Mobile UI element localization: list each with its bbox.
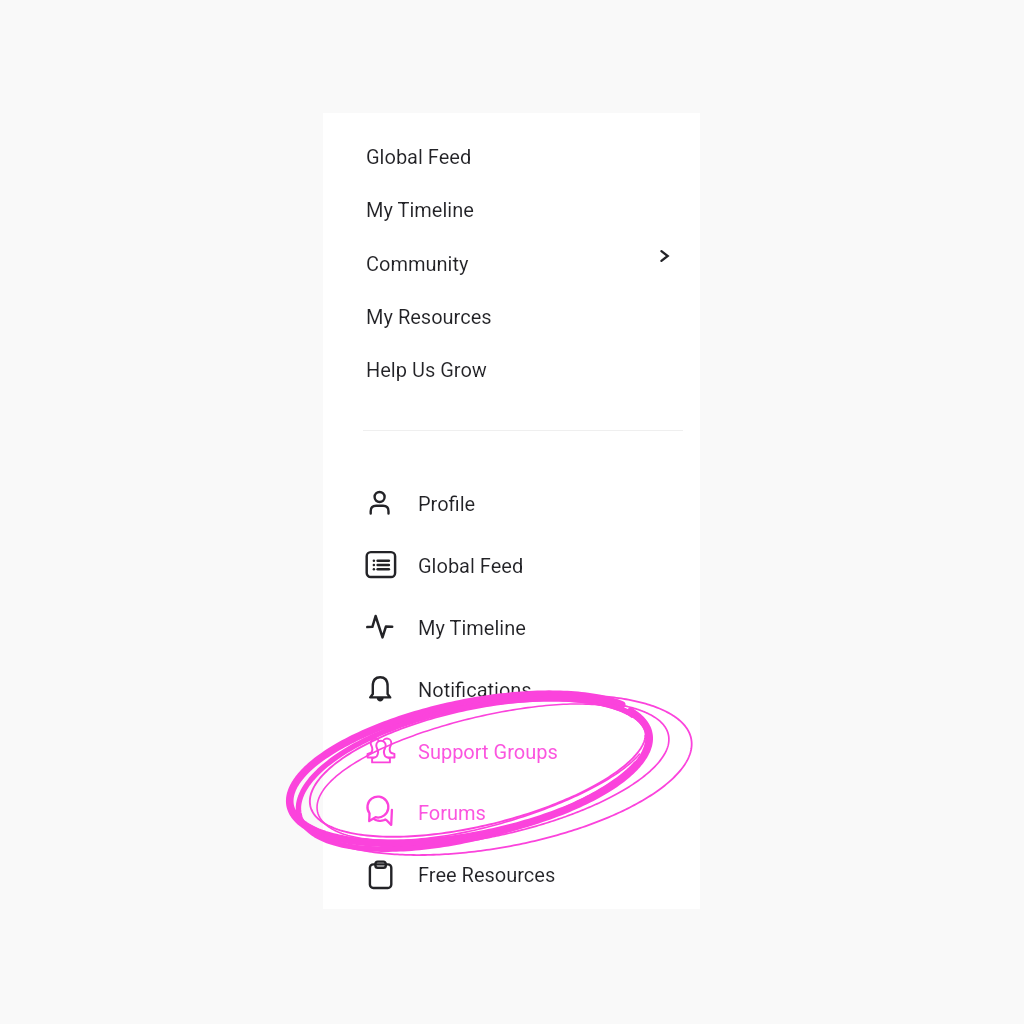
other: Highlight annotation [0, 0, 1024, 1024]
button[interactable]: My Timeline [323, 603, 700, 651]
button[interactable]: Free Resources [323, 850, 700, 898]
button[interactable]: Global Feed [323, 133, 700, 177]
staticText: Notifications [418, 678, 532, 701]
staticText: Global Feed [366, 145, 472, 168]
staticText: My Timeline [366, 198, 474, 221]
staticText: My Timeline [418, 616, 526, 639]
button[interactable]: Help Us Grow [323, 346, 700, 390]
staticText: Global Feed [418, 554, 524, 577]
staticText: Forums [418, 801, 486, 824]
button[interactable]: Forums [323, 788, 700, 836]
staticText: Profile [418, 492, 476, 515]
button[interactable]: Support Groups [323, 727, 700, 775]
staticText: Help Us Grow [366, 358, 487, 381]
button[interactable]: Notifications [323, 665, 700, 713]
staticText: My Resources [366, 305, 492, 328]
button[interactable]: Profile [323, 479, 700, 527]
other: Expand Community [660, 249, 674, 263]
staticText: Free Resources [418, 863, 556, 886]
button[interactable]: My Timeline [323, 186, 700, 230]
staticText: Support Groups [418, 740, 558, 763]
button[interactable]: My Resources [323, 293, 700, 337]
staticText: Community [366, 252, 469, 275]
button[interactable]: Global Feed [323, 541, 700, 589]
button[interactable]: Community [323, 240, 700, 284]
